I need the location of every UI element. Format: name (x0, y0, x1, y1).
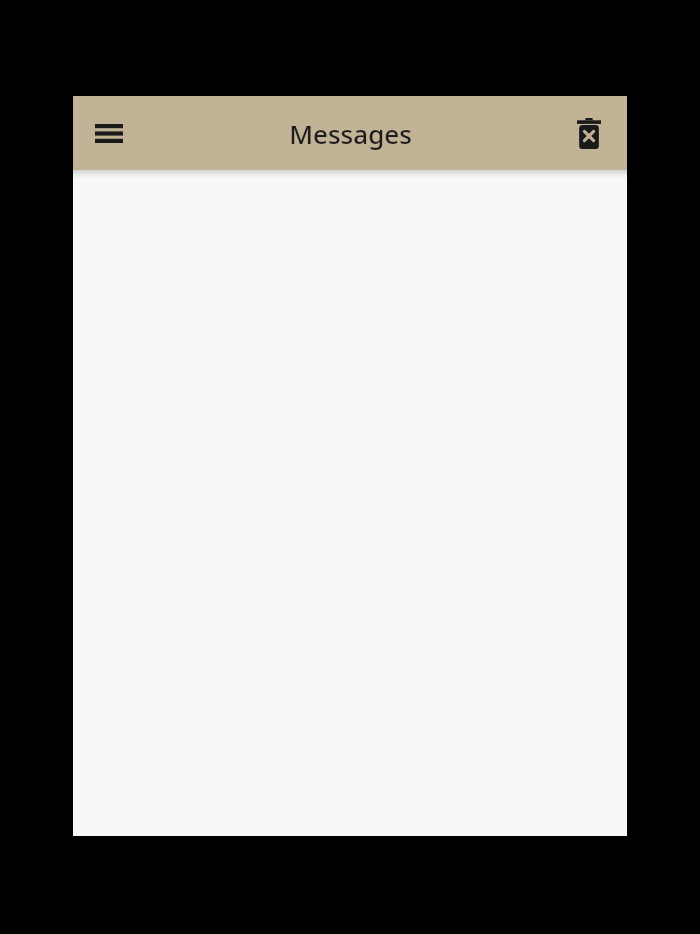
staticText: Messages (289, 116, 412, 151)
button[interactable]: Delete all messages (563, 107, 615, 159)
button[interactable]: Menu (83, 107, 135, 159)
